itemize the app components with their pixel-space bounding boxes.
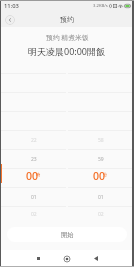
staticText: 00: [26, 169, 39, 183]
button[interactable]: 58: [68, 131, 133, 150]
staticText: 59: [98, 156, 104, 163]
staticText: 01: [31, 194, 37, 201]
button[interactable]: 59: [68, 150, 133, 169]
button[interactable]: [1, 55, 66, 74]
button[interactable]: Back: [88, 251, 103, 266]
staticText: 预约: [60, 15, 74, 24]
staticText: 00: [93, 169, 106, 183]
staticText: 预约 精煮米饭: [46, 33, 89, 41]
staticText: 開始: [61, 231, 74, 239]
staticText: 02: [31, 211, 37, 218]
button[interactable]: 00: [1, 169, 66, 188]
button[interactable]: [68, 112, 133, 131]
button[interactable]: [68, 74, 133, 93]
button[interactable]: Recent apps: [31, 251, 46, 266]
button[interactable]: [68, 93, 133, 112]
button[interactable]: 00: [68, 169, 133, 188]
staticText: 3.2KB/s: [93, 3, 108, 9]
button[interactable]: Home: [59, 251, 74, 266]
staticText: 22: [31, 137, 37, 144]
staticText: 02: [98, 211, 104, 218]
button[interactable]: 01: [1, 188, 66, 207]
button[interactable]: Back: [5, 15, 15, 25]
staticText: 時: [36, 172, 41, 177]
button[interactable]: 02: [68, 207, 133, 222]
button[interactable]: 01: [68, 188, 133, 207]
staticText: 58: [98, 137, 104, 144]
staticText: 23: [31, 156, 37, 163]
staticText: 11:03: [4, 2, 19, 10]
button[interactable]: [68, 55, 133, 74]
staticText: 分: [103, 172, 108, 177]
button[interactable]: 開始: [7, 227, 127, 242]
staticText: 明天凌晨00:00開飯: [28, 45, 106, 57]
button[interactable]: 23: [1, 150, 66, 169]
staticText: 01: [98, 194, 104, 201]
